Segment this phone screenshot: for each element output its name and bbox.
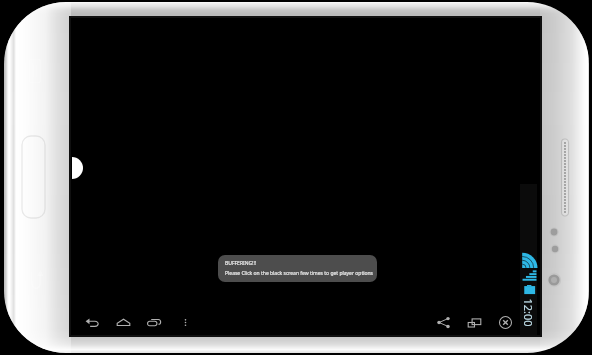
staticText: 12:00 xyxy=(522,298,535,332)
button[interactable]: Share xyxy=(428,310,459,335)
button[interactable]: Home xyxy=(108,310,139,335)
button[interactable]: Recent apps xyxy=(139,310,170,335)
button[interactable]: Close xyxy=(490,310,521,335)
button[interactable]: Back xyxy=(77,310,108,335)
staticText: BUFFERING!!! xyxy=(225,260,257,267)
button[interactable]: More options xyxy=(170,310,201,335)
staticText: Please Click on the black screan few tim… xyxy=(225,270,374,277)
button[interactable]: Picture in picture xyxy=(459,310,490,335)
